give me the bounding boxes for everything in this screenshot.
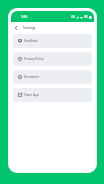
staticText: Feedback [24, 39, 38, 43]
staticText: 98 [84, 15, 88, 19]
button[interactable]: Privacy Policy [13, 52, 92, 66]
staticText: Disclaimer [24, 75, 40, 79]
button[interactable]: Disclaimer [13, 70, 92, 84]
staticText: 4G [71, 15, 75, 19]
button[interactable]: Back [11, 22, 20, 33]
staticText: Settings [23, 26, 36, 30]
staticText: Share App [24, 93, 39, 97]
button[interactable]: Share App [13, 88, 92, 102]
staticText: Privacy Policy [24, 57, 44, 61]
button[interactable]: Feedback [13, 34, 92, 48]
staticText: 9:30 [21, 15, 28, 19]
